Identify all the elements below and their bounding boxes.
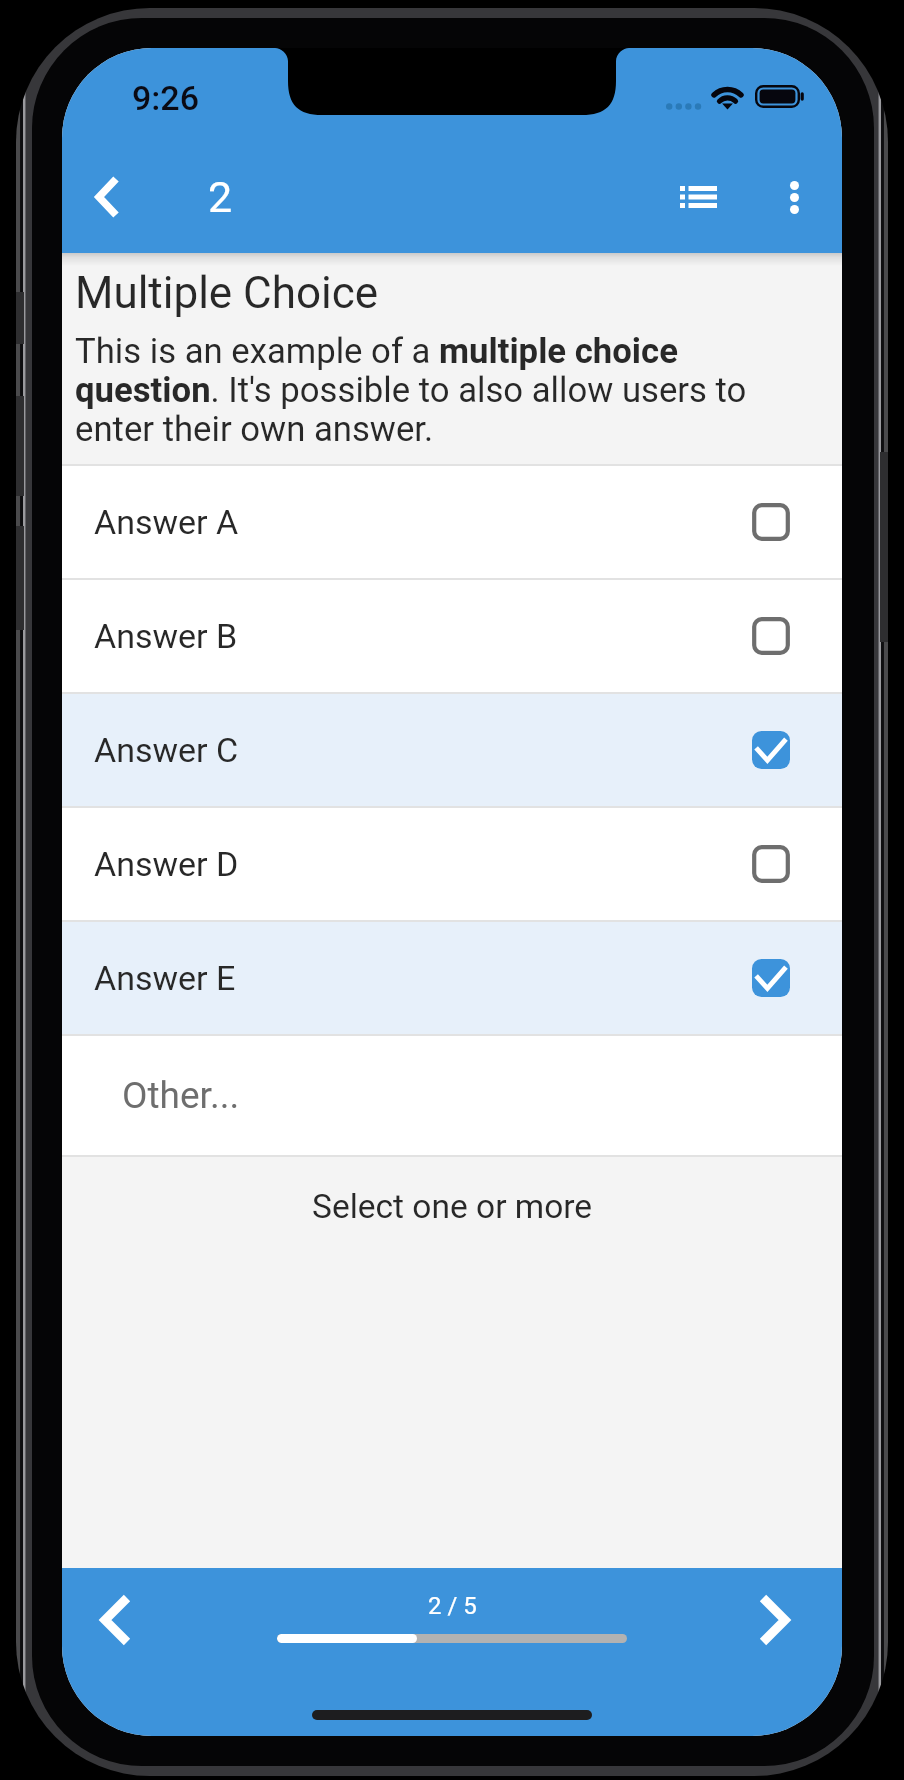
button[interactable]: More options	[746, 149, 842, 245]
staticText: This is an example of a multiple choice …	[75, 331, 772, 449]
button[interactable]: Answer E	[62, 922, 842, 1034]
button[interactable]: Answer B	[62, 580, 842, 692]
staticText: Answer E	[94, 958, 236, 998]
staticText: Answer B	[94, 616, 238, 656]
staticText: Answer A	[94, 502, 239, 542]
button[interactable]: Other...	[62, 1036, 842, 1155]
button[interactable]: Answer A	[62, 466, 842, 578]
staticText: Answer D	[94, 844, 239, 884]
button[interactable]: Next	[732, 1578, 816, 1662]
button[interactable]: Back	[68, 158, 146, 236]
staticText: Select one or more	[312, 1187, 593, 1226]
staticText: Answer C	[94, 730, 239, 770]
staticText: 9:26	[132, 78, 199, 118]
button[interactable]: List view	[650, 149, 746, 245]
staticText: Other...	[122, 1074, 240, 1117]
button[interactable]: Answer D	[62, 808, 842, 920]
button[interactable]: Answer C	[62, 694, 842, 806]
button[interactable]: Previous	[74, 1578, 158, 1662]
staticText: 2 / 5	[428, 1592, 477, 1620]
staticText: 2	[208, 172, 233, 222]
staticText: Multiple Choice	[75, 267, 379, 319]
